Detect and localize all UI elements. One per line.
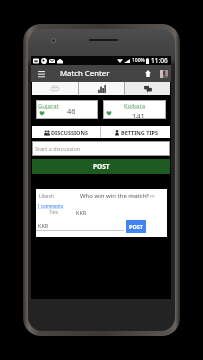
staticText: 100%: [132, 57, 145, 64]
button[interactable]: Kolkata: [103, 100, 166, 119]
staticText: BETTING TIPS: [121, 129, 158, 136]
staticText: POST: [93, 162, 110, 171]
staticText: Likesh: [39, 193, 54, 200]
button[interactable]: DISCUSSIONS: [32, 126, 100, 138]
staticText: Start a discussion: [35, 145, 81, 152]
button[interactable]: Start a discussion: [32, 141, 170, 156]
staticText: DISCUSSIONS: [51, 129, 88, 136]
button[interactable]: Matches tab: [32, 82, 78, 95]
staticText: 46: [67, 106, 76, 116]
staticText: Gujarat: [38, 102, 59, 110]
staticText: Kolkata: [124, 102, 145, 110]
button[interactable]: KKR: [36, 219, 124, 231]
staticText: about 2 hours ago: [129, 194, 155, 198]
staticText: KKR: [38, 222, 49, 229]
button[interactable]: POST: [126, 220, 146, 233]
button[interactable]: Profile picture: [160, 70, 168, 78]
button[interactable]: Statistics tab: [79, 82, 124, 95]
button[interactable]: Home: [142, 68, 153, 79]
staticText: Tino: [49, 209, 59, 215]
button[interactable]: BETTING TIPS: [101, 126, 170, 138]
button[interactable]: POST: [32, 159, 170, 174]
staticText: Match Center: [60, 68, 110, 79]
button[interactable]: 1 comments: [37, 203, 64, 209]
staticText: POST: [129, 223, 143, 230]
button[interactable]: Gujarat: [36, 100, 98, 119]
button[interactable]: Comments tab: [125, 82, 170, 95]
staticText: Who win win the match?: [80, 192, 149, 200]
staticText: 141: [132, 111, 145, 120]
button[interactable]: Open navigation menu: [35, 68, 47, 80]
staticText: 11:06: [151, 56, 168, 65]
staticText: KKR: [76, 209, 87, 216]
